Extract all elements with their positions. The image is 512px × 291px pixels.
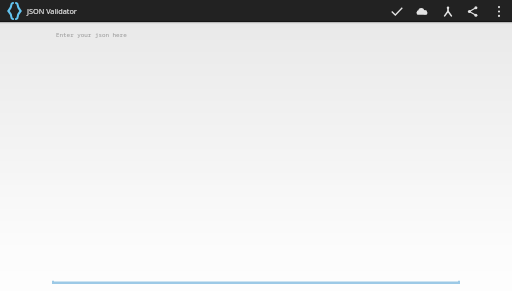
button[interactable]: Save to cloud	[411, 0, 433, 22]
button[interactable]: Format	[437, 0, 459, 22]
button[interactable]: More options	[488, 0, 510, 22]
button[interactable]: Validate	[386, 0, 408, 22]
staticText: Enter your json here	[56, 31, 127, 39]
button[interactable]: JSON Validator	[0, 0, 83, 22]
staticText: JSON Validator	[27, 6, 77, 16]
button[interactable]: JSON input field	[0, 22, 512, 291]
button[interactable]: Share	[462, 0, 484, 22]
